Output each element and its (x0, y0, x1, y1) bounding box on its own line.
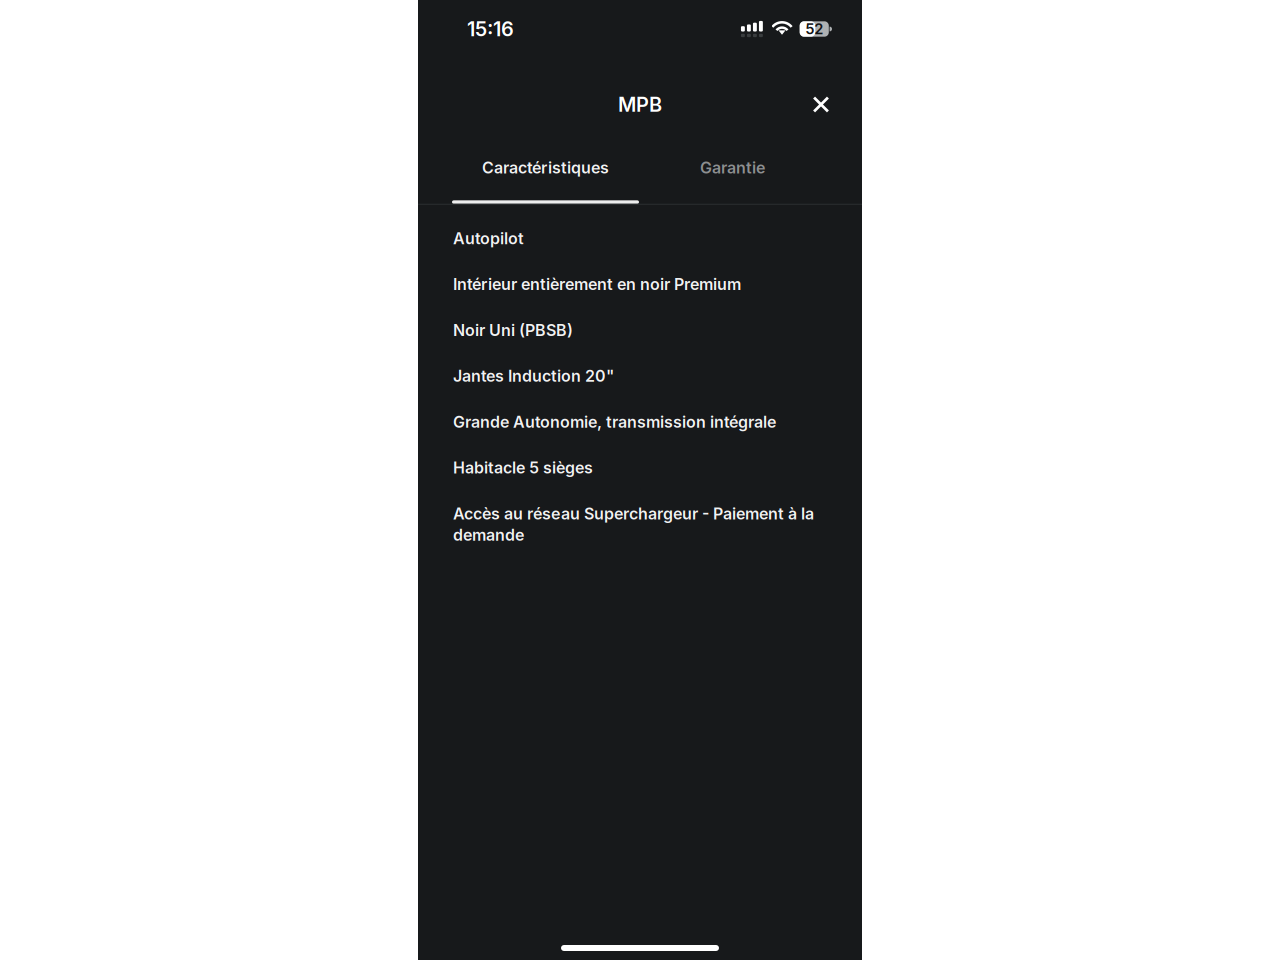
staticText: Garantie (700, 158, 765, 177)
staticText: Autopilot (453, 229, 524, 248)
staticText: Noir Uni (PBSB) (453, 320, 573, 340)
staticText: 15:16 (467, 17, 514, 41)
button[interactable]: Caractéristiques (452, 158, 639, 204)
button[interactable]: Close (799, 82, 843, 126)
staticText: Habitacle 5 sièges (453, 458, 593, 477)
staticText: Caractéristiques (482, 158, 609, 177)
button[interactable]: Garantie (639, 158, 826, 204)
staticText: MPB (618, 92, 662, 117)
staticText: Grande Autonomie, transmission intégrale (453, 412, 776, 432)
staticText: 52 (805, 20, 823, 38)
staticText: Accès au réseau Superchargeur - Paiement… (453, 504, 814, 545)
staticText: Intérieur entièrement en noir Premium (453, 275, 741, 294)
staticText: Jantes Induction 20" (453, 366, 614, 386)
